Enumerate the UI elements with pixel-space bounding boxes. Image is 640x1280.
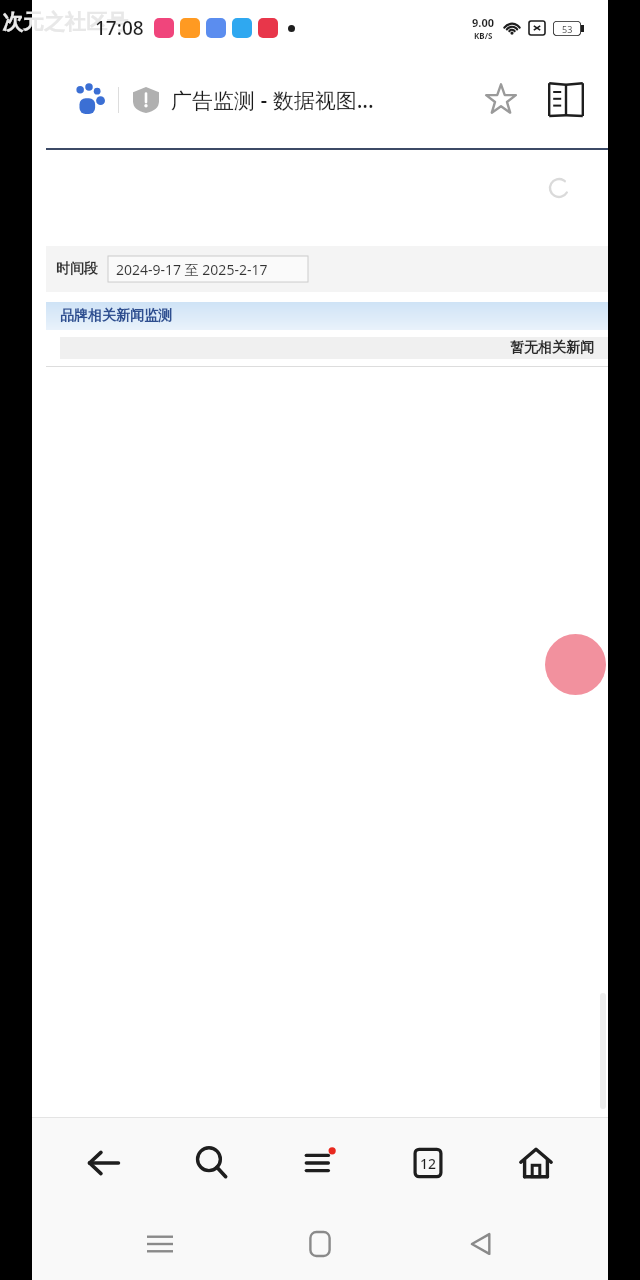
button[interactable]: 广告监测 - 数据视图...: [72, 66, 518, 134]
staticText: 时间段: [56, 260, 98, 278]
button[interactable]: Tabs: 12: [392, 1127, 464, 1199]
button[interactable]: Search: [176, 1127, 248, 1199]
button[interactable]: Back: [68, 1127, 140, 1199]
button[interactable]: Home: [287, 1211, 353, 1277]
button[interactable]: Floating assistant ball: [545, 634, 606, 695]
other: Bookmark: [484, 83, 518, 117]
staticText: 广告监测 - 数据视图...: [171, 86, 476, 115]
button[interactable]: Home: [500, 1127, 572, 1199]
staticText: KB/S: [474, 30, 493, 41]
button[interactable]: Recents: [127, 1211, 193, 1277]
staticText: 17:08: [95, 15, 144, 41]
staticText: 暂无相关新闻: [510, 339, 594, 357]
button[interactable]: Menu: [284, 1127, 356, 1199]
button[interactable]: Reader mode: [546, 80, 586, 120]
staticText: 2024-9-17 至 2025-2-17: [116, 260, 268, 279]
staticText: 53: [562, 23, 573, 35]
staticText: 9.00: [472, 15, 494, 30]
button[interactable]: Back: [448, 1211, 514, 1277]
staticText: 次元之社区号: [2, 9, 128, 35]
staticText: 品牌相关新闻监测: [60, 307, 172, 325]
staticText: 12: [420, 1154, 437, 1173]
